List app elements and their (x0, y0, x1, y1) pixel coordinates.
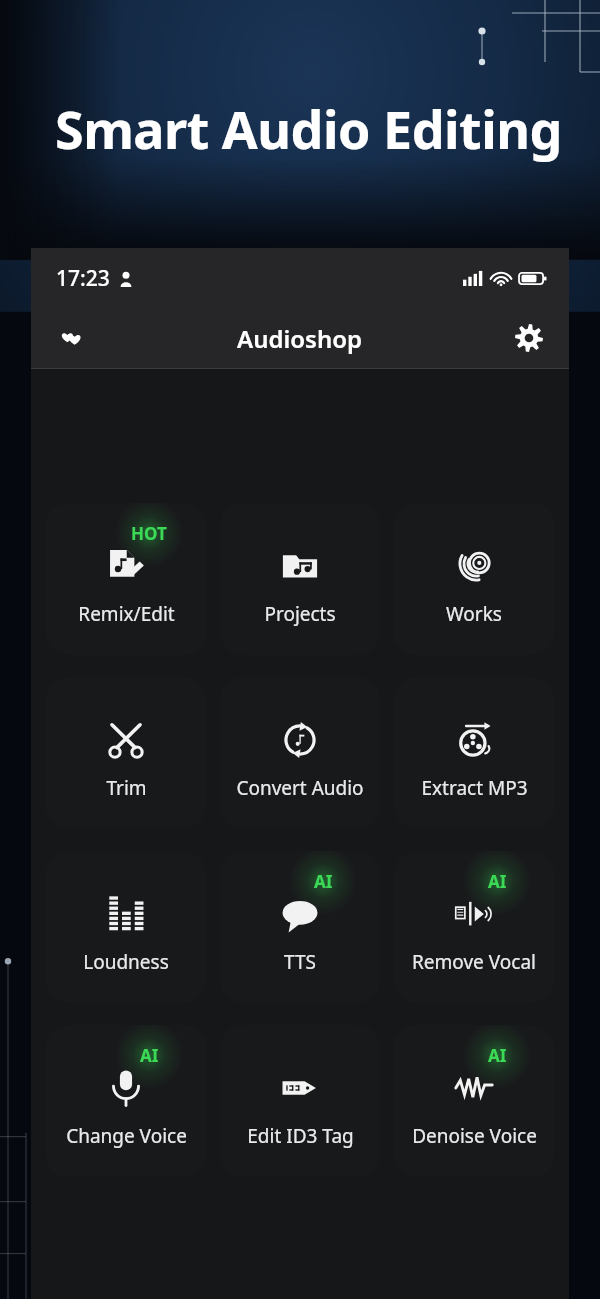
staticText: Denoise Voice (412, 1123, 537, 1149)
staticText: Convert Audio (236, 775, 364, 801)
staticText: AI (314, 870, 333, 893)
button[interactable]: Projects (220, 503, 380, 655)
staticText: AI (488, 870, 507, 893)
button[interactable]: Convert Audio (220, 677, 380, 829)
button[interactable]: AI (394, 851, 554, 1003)
staticText: Loudness (83, 949, 169, 975)
staticText: Remove Vocal (412, 949, 536, 975)
staticText: Change Voice (66, 1123, 187, 1149)
staticText: 17:23 (56, 264, 110, 293)
staticText: Audioshop (237, 322, 363, 355)
button[interactable]: AI (220, 851, 380, 1003)
staticText: Smart Audio Editing (55, 93, 562, 164)
staticText: HOT (131, 522, 167, 545)
button[interactable]: Settings (507, 316, 551, 360)
button[interactable]: Extract MP3 (394, 677, 554, 829)
staticText: TTS (284, 949, 316, 975)
staticText: Projects (264, 601, 336, 627)
staticText: Remix/Edit (78, 601, 175, 627)
button[interactable]: Works (394, 503, 554, 655)
button[interactable]: AI (46, 1025, 206, 1177)
staticText: Edit ID3 Tag (247, 1123, 354, 1149)
staticText: Trim (106, 775, 147, 801)
button[interactable]: AI (394, 1025, 554, 1177)
staticText: AI (140, 1044, 159, 1067)
button[interactable]: HOT (46, 503, 206, 655)
button[interactable]: Favorites (49, 316, 93, 360)
staticText: Works (446, 601, 502, 627)
staticText: Extract MP3 (421, 775, 528, 801)
button[interactable]: Trim (46, 677, 206, 829)
staticText: AI (488, 1044, 507, 1067)
button[interactable]: Edit ID3 Tag (220, 1025, 380, 1177)
button[interactable]: Loudness (46, 851, 206, 1003)
